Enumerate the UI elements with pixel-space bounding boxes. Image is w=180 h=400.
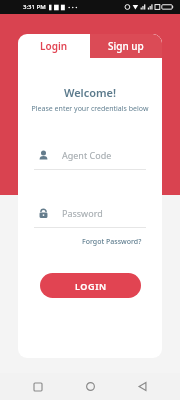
staticText: Agent Code bbox=[62, 149, 112, 161]
button[interactable]: LOGIN bbox=[40, 273, 141, 298]
button[interactable]: Back bbox=[128, 373, 156, 400]
staticText: Sign up bbox=[108, 39, 144, 53]
staticText: LOGIN bbox=[75, 280, 107, 292]
button[interactable]: Sign up bbox=[90, 34, 162, 58]
staticText: Please enter your credentials below bbox=[18, 104, 162, 114]
button[interactable]: Forgot Password? bbox=[80, 235, 144, 249]
staticText: 3:31 PM bbox=[23, 3, 46, 11]
button[interactable]: Home bbox=[76, 373, 104, 400]
staticText: Welcome! bbox=[18, 85, 162, 100]
button[interactable]: Login bbox=[18, 34, 90, 58]
staticText: Password bbox=[62, 207, 103, 219]
staticText: Forgot Password? bbox=[82, 237, 142, 247]
button[interactable]: Recent apps bbox=[24, 373, 52, 400]
staticText: Login bbox=[40, 39, 68, 53]
